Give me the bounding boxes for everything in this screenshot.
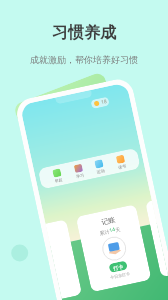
button[interactable] xyxy=(145,201,168,277)
button[interactable] xyxy=(45,219,82,299)
staticText: 习惯养成 xyxy=(52,23,116,43)
staticText: 打卡 xyxy=(113,263,124,271)
button[interactable] xyxy=(52,168,62,178)
staticText: 运动 xyxy=(96,168,105,175)
staticText: 18 xyxy=(100,98,108,106)
button[interactable] xyxy=(116,154,125,164)
staticText: 读书 xyxy=(118,163,126,170)
button[interactable] xyxy=(94,159,104,169)
button[interactable]: 打卡 xyxy=(108,260,128,273)
button[interactable]: 记账 xyxy=(76,204,152,292)
staticText: 成就激励，帮你培养好习惯 xyxy=(30,54,138,65)
staticText: 累计 xyxy=(99,228,110,236)
staticText: 14 xyxy=(109,226,116,234)
staticText: 早起 xyxy=(54,177,63,184)
staticText: 天 xyxy=(115,226,121,233)
staticText: 记账 xyxy=(100,215,116,227)
staticText: 学习 xyxy=(76,172,84,179)
staticText: 今日未打卡 xyxy=(110,271,130,280)
button[interactable] xyxy=(74,164,83,173)
